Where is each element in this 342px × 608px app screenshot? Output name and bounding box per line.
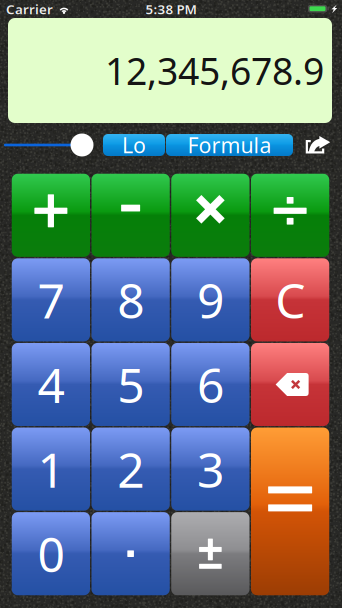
staticText: 12,345,678.9 bbox=[105, 46, 324, 95]
button[interactable]: 0 bbox=[12, 512, 90, 595]
button[interactable]: Minus bbox=[91, 174, 170, 257]
button[interactable]: Equals bbox=[251, 427, 329, 595]
button[interactable]: Plus minus bbox=[171, 512, 249, 595]
button[interactable]: 2 bbox=[91, 427, 170, 511]
button[interactable]: 1 bbox=[12, 427, 90, 511]
staticText: 6 bbox=[197, 353, 224, 416]
staticText: 3 bbox=[197, 437, 224, 501]
staticText: 9 bbox=[197, 268, 224, 332]
button[interactable]: Multiply bbox=[171, 174, 249, 257]
staticText: C bbox=[275, 268, 305, 332]
button[interactable]: Clear bbox=[251, 258, 329, 341]
staticText: Carrier bbox=[6, 0, 53, 18]
staticText: 5:38 PM bbox=[145, 0, 196, 18]
staticText: 2 bbox=[117, 437, 144, 501]
staticText: Formula bbox=[187, 131, 271, 159]
button[interactable]: Formula bbox=[166, 134, 293, 156]
button[interactable]: Decimal point bbox=[91, 512, 170, 595]
staticText: 8 bbox=[117, 268, 144, 332]
staticText: Lo bbox=[122, 131, 146, 159]
staticText: 4 bbox=[37, 353, 64, 416]
button[interactable]: 6 bbox=[171, 343, 249, 426]
button[interactable]: 9 bbox=[171, 258, 249, 341]
staticText: 1 bbox=[37, 437, 64, 501]
button[interactable]: Plus bbox=[12, 174, 90, 257]
button[interactable]: Backspace bbox=[251, 343, 329, 426]
button[interactable]: 3 bbox=[171, 427, 249, 511]
button[interactable]: 5 bbox=[91, 343, 170, 426]
staticText: 5 bbox=[117, 353, 144, 416]
staticText: 0 bbox=[37, 522, 64, 585]
button[interactable]: 4 bbox=[12, 343, 90, 426]
button[interactable]: Share bbox=[301, 129, 335, 161]
button[interactable]: Lo bbox=[103, 134, 165, 156]
button[interactable]: 7 bbox=[12, 258, 90, 341]
button[interactable]: Divide bbox=[251, 174, 329, 257]
button[interactable]: 8 bbox=[91, 258, 170, 341]
staticText: 7 bbox=[37, 268, 64, 332]
